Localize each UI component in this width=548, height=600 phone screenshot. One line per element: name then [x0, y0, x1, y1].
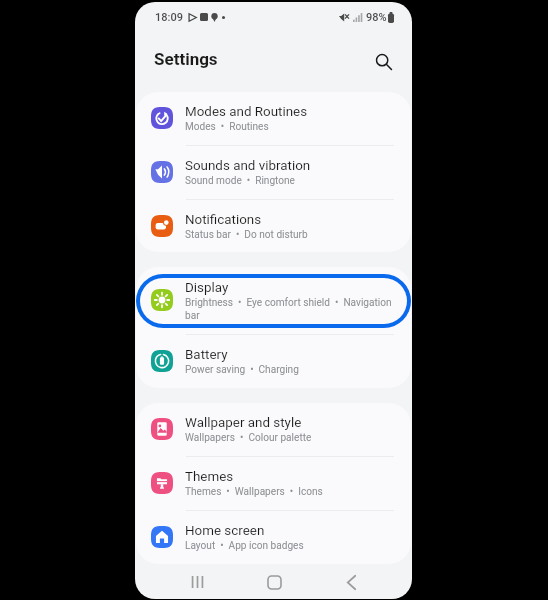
- staticText: Power saving • Charging: [185, 364, 299, 376]
- button[interactable]: Search: [368, 46, 398, 76]
- button[interactable]: Back: [328, 565, 374, 599]
- staticText: Sounds and vibration: [185, 158, 311, 173]
- staticText: Status bar • Do not disturb: [185, 229, 308, 241]
- staticText: Notifications: [185, 212, 262, 227]
- button[interactable]: Home: [251, 565, 297, 599]
- staticText: Home screen: [185, 523, 265, 538]
- staticText: Wallpapers • Colour palette: [185, 432, 312, 444]
- button[interactable]: Recents: [174, 565, 220, 599]
- button[interactable]: [140, 278, 407, 324]
- staticText: Themes • Wallpapers • Icons: [185, 486, 323, 498]
- button[interactable]: Modes and Routines: [136, 92, 411, 145]
- button[interactable]: Home screen: [136, 511, 411, 564]
- staticText: Modes and Routines: [185, 104, 308, 119]
- button[interactable]: Notifications: [136, 200, 411, 252]
- button[interactable]: Themes: [136, 457, 411, 510]
- staticText: Modes • Routines: [185, 121, 269, 133]
- staticText: Display: [185, 280, 229, 295]
- staticText: Settings: [154, 49, 218, 69]
- staticText: Wallpaper and style: [185, 415, 302, 430]
- button[interactable]: Battery: [136, 335, 411, 388]
- staticText: Battery: [185, 347, 228, 362]
- staticText: 98%: [366, 11, 387, 24]
- staticText: Themes: [185, 469, 234, 484]
- staticText: Layout • App icon badges: [185, 540, 304, 552]
- staticText: 18:09: [155, 11, 183, 24]
- button[interactable]: Wallpaper and style: [136, 403, 411, 456]
- staticText: Sound mode • Ringtone: [185, 175, 295, 187]
- button[interactable]: Sounds and vibration: [136, 146, 411, 199]
- staticText: Brightness • Eye comfort shield • Naviga…: [185, 297, 395, 322]
